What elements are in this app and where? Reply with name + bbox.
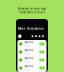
staticText: Reserve in one tap xyxy=(18,7,46,10)
staticText: 7:00 xyxy=(23,52,30,55)
staticText: Osteria xyxy=(23,40,33,44)
staticText: 7:00 xyxy=(23,44,30,47)
staticText: 7:00 xyxy=(23,60,30,63)
staticText: Make Reservation xyxy=(18,27,44,30)
staticText: 7:00 xyxy=(23,68,30,71)
staticText: Osteria xyxy=(23,56,33,60)
staticText: restaurants near you xyxy=(18,10,45,14)
staticText: Osteria xyxy=(23,48,33,52)
staticText: Osteria xyxy=(23,64,33,68)
